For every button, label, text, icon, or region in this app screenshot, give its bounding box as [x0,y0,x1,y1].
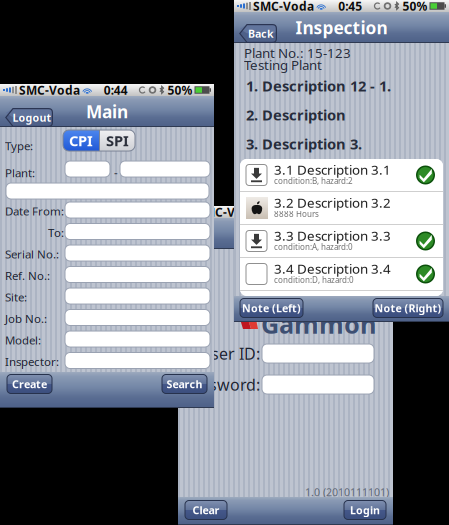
staticText: Job No.: [5,311,47,326]
staticText: Clear [192,503,219,517]
staticText: 0:45 [282,204,306,220]
button[interactable]: CPI [63,130,99,151]
button[interactable]: Text field [262,344,374,363]
staticText: condition:D, hazard:0 [274,275,354,285]
staticText: 3.4 Description 3.4 [274,260,391,277]
button[interactable]: Text field [65,223,210,239]
staticText: condition:A, hazard:0 [274,242,353,252]
staticText: To: [48,225,64,240]
staticText: Back [248,26,274,41]
staticText: Create [12,377,47,391]
staticText: 2. Description [246,105,346,124]
staticText: 1. Description 12 - 1. [246,76,391,95]
staticText: Inspection [295,16,387,39]
staticText: Model: [5,332,41,348]
button[interactable]: Clear [185,500,227,519]
button[interactable]: 3.3 Description 3.3 [240,225,443,257]
button[interactable]: 3.5 Description 3.5 [240,291,443,323]
staticText: Type: [5,138,33,154]
button[interactable]: Note (Right) [373,298,443,317]
staticText: Search [166,377,202,391]
staticText: Login [350,503,380,517]
staticText: 50% [346,204,371,220]
staticText: 8888 Hours [274,209,319,219]
staticText: CPI [69,131,93,150]
staticText: Plant No.: 15-123 [244,44,351,62]
staticText: Note (Left) [242,301,301,315]
button[interactable]: SPI [100,130,135,151]
button[interactable]: Text field [65,352,210,368]
button[interactable]: Text field [65,161,110,177]
staticText: Inspector: [5,354,59,369]
button[interactable]: Note (Left) [240,298,303,317]
button[interactable]: Login [344,500,386,519]
staticText: 0:45 [338,0,362,14]
button[interactable]: Text field [65,245,210,261]
button[interactable]: Search [162,374,207,393]
staticText: Note (Right) [374,301,441,315]
staticText: Password: [182,374,260,395]
staticText: SMC-Voda [19,82,80,98]
button[interactable]: Text field [65,266,210,282]
button[interactable]: Back [239,24,277,43]
staticText: Serial No.: [5,246,59,262]
staticText: 3.2 Description 3.2 [274,194,391,211]
button[interactable]: Text field [65,288,210,304]
staticText: SMC-Voda [197,204,258,220]
staticText: Testing Plant [244,56,322,74]
staticText: SPI [106,131,129,150]
button[interactable]: 3.2 Description 3.2 [240,192,443,224]
staticText: condition:B, hazard:2 [274,176,353,186]
button[interactable]: 3.4 Description 3.4 [240,258,443,290]
staticText: Site: [5,289,27,305]
button[interactable]: Text field [65,331,210,347]
staticText: 50% [402,0,427,14]
staticText: SMC-Voda [253,0,314,14]
staticText: 3.5 Description 3.5 [274,293,391,310]
staticText: 50% [167,82,192,98]
button[interactable]: 3.1 Description 3.1 [240,159,443,191]
button[interactable]: Text field [262,375,374,394]
button[interactable]: Logout [5,108,53,127]
button[interactable]: Text field [6,183,209,199]
button[interactable]: Text field [65,309,210,325]
staticText: Ref. No.: [5,268,50,283]
staticText: 3. Description 3. [246,134,362,153]
staticText: Logout [12,110,51,125]
staticText: Date From: [5,203,64,219]
staticText: Plant: [5,165,35,181]
staticText: condition:C, hazard:1 [274,308,353,318]
staticText: 1.0 (2010111101) [305,485,389,499]
staticText: Main [86,100,128,123]
staticText: 3.1 Description 3.1 [274,161,391,178]
staticText: 0:44 [104,82,128,98]
staticText: Gammon [261,307,376,341]
button[interactable]: Create [7,374,52,393]
staticText: - [114,164,118,180]
button[interactable]: Text field [120,161,210,177]
staticText: User ID: [199,343,260,364]
button[interactable]: Text field [65,202,210,218]
staticText: 3.3 Description 3.3 [274,227,391,244]
